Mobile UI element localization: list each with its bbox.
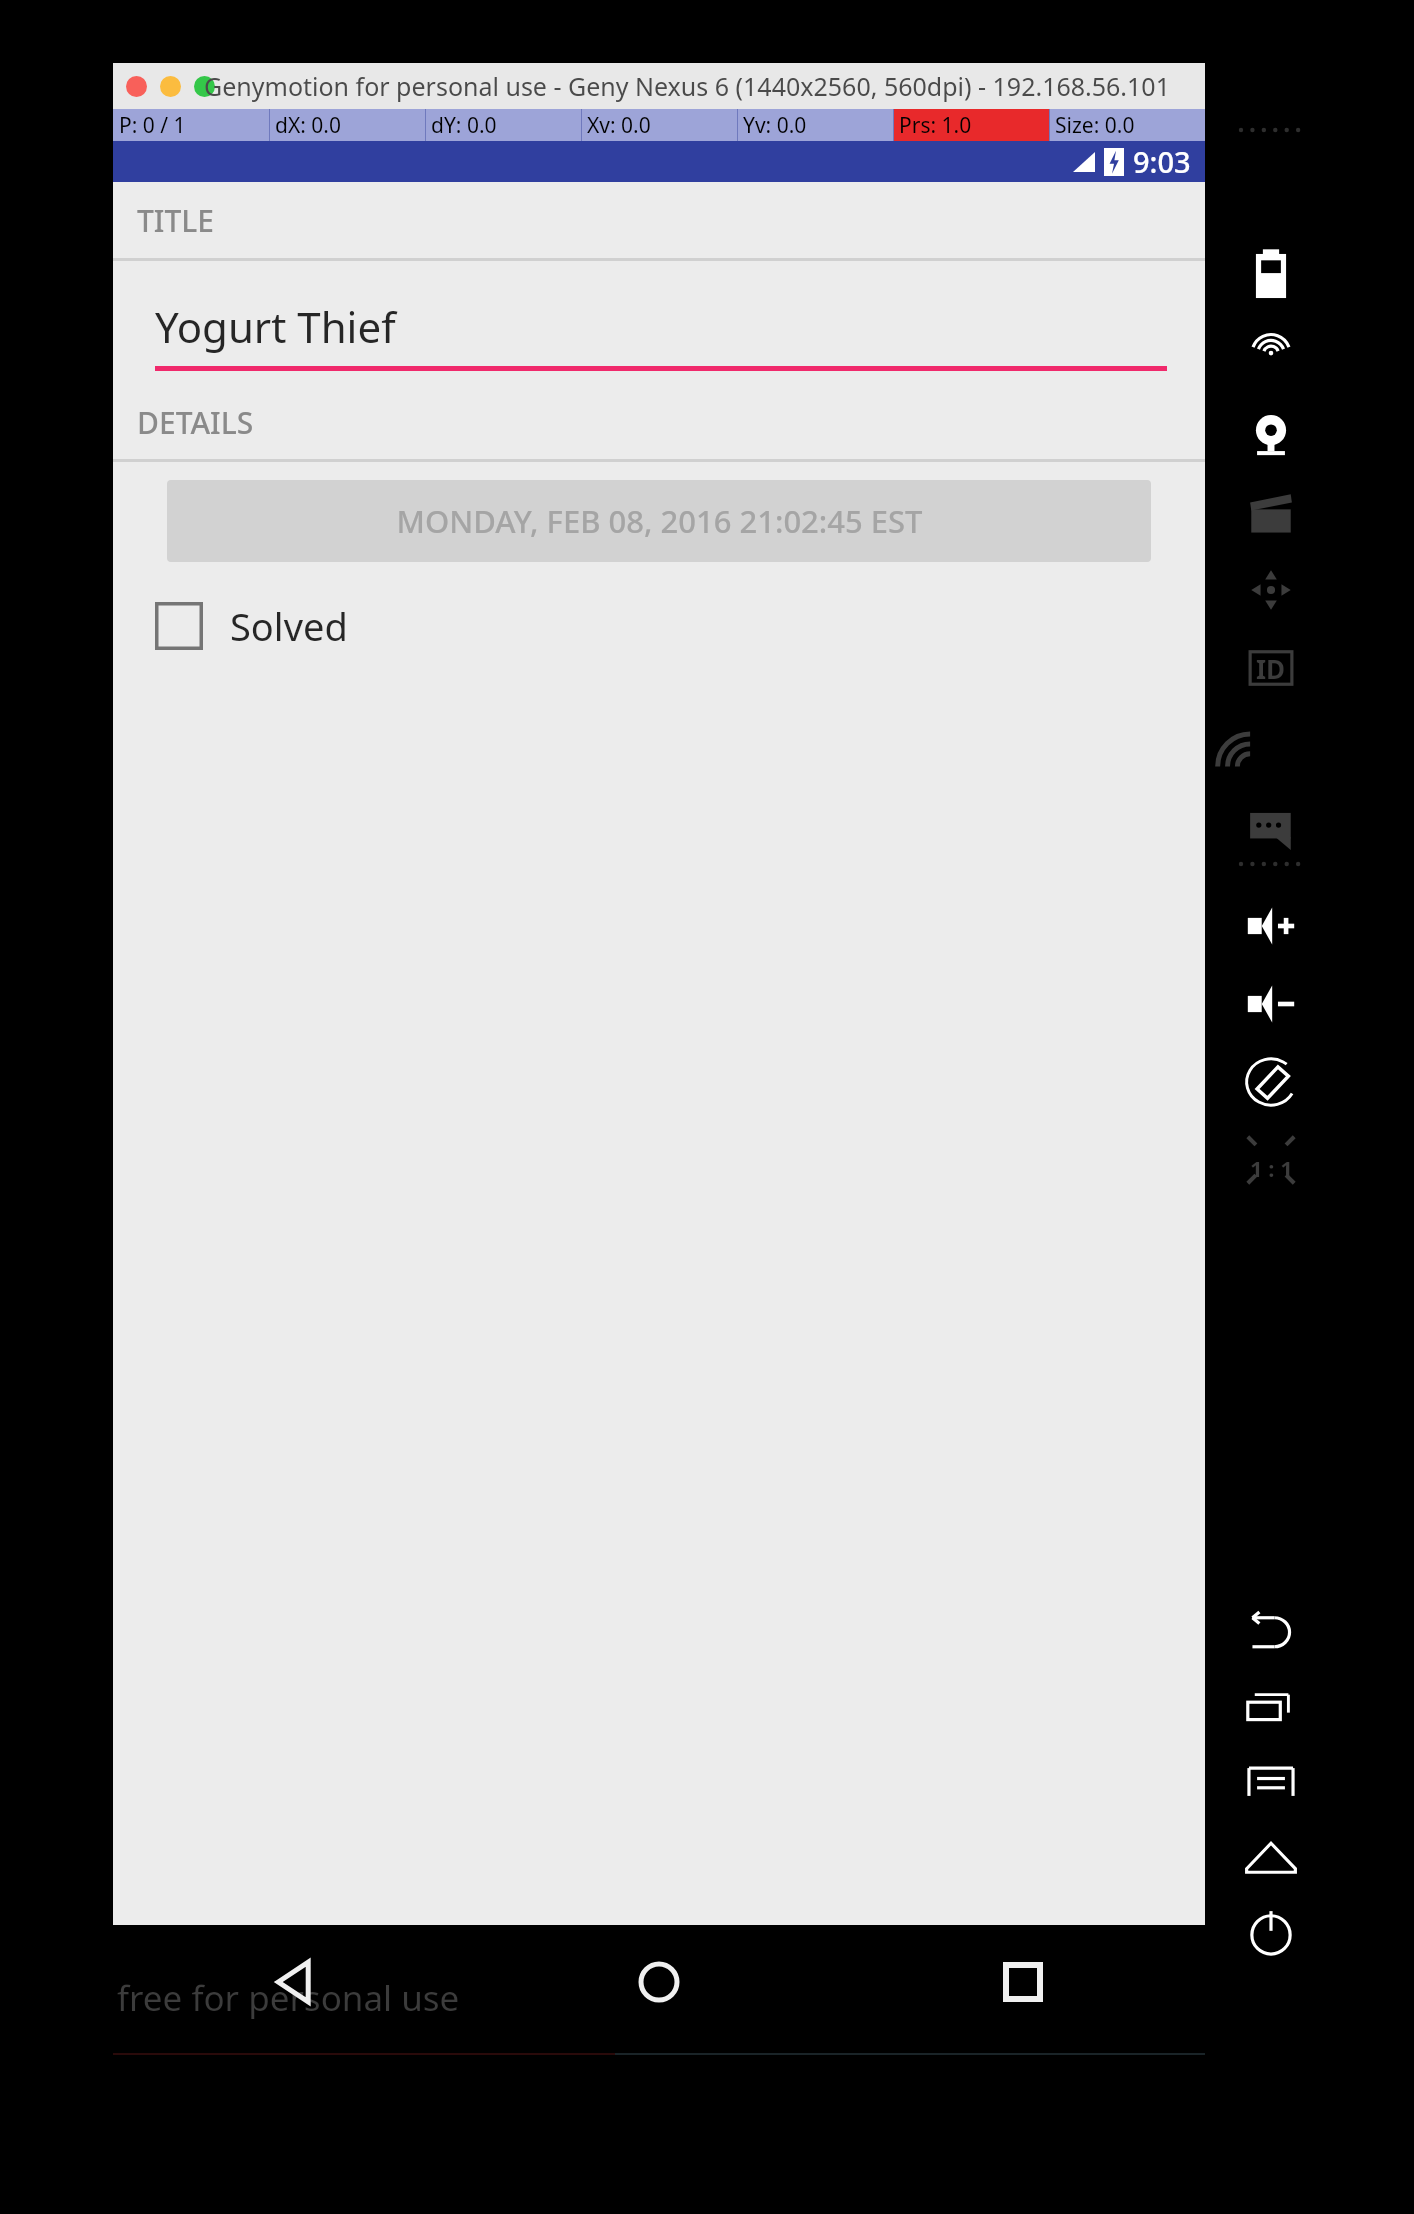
staticText: Size: 0.0 (1055, 111, 1135, 140)
staticText: TITLE (137, 200, 215, 241)
staticText: 1 : 1 (1250, 1153, 1293, 1183)
staticText: P: 0 / 1 (119, 111, 186, 140)
button[interactable]: Menu (1242, 1753, 1300, 1811)
button[interactable]: Volume up (1242, 897, 1300, 955)
button[interactable]: Screen recorder (1242, 485, 1300, 543)
button[interactable]: Scale 1:1 (1242, 1131, 1300, 1189)
button[interactable]: Rotate (1242, 1053, 1300, 1111)
staticText: Yogurt Thief (155, 298, 396, 355)
button[interactable]: MONDAY, FEB 08, 2016 21:02:45 EST (167, 480, 1151, 562)
staticText: Solved (230, 600, 348, 652)
button[interactable]: SMS (1242, 799, 1300, 857)
button[interactable] (194, 76, 215, 97)
button[interactable]: Back (1242, 1605, 1300, 1663)
button[interactable]: Power (1242, 1903, 1300, 1961)
button[interactable]: Camera (1242, 407, 1300, 465)
staticText: Prs: 1.0 (899, 111, 972, 140)
button[interactable]: Network (1242, 719, 1300, 777)
button[interactable]: Battery (1242, 247, 1300, 305)
button[interactable] (126, 76, 147, 97)
button[interactable]: Volume down (1242, 975, 1300, 1033)
staticText: dY: 0.0 (431, 111, 497, 140)
button[interactable]: Home (477, 1917, 841, 2047)
staticText: DETAILS (137, 402, 254, 443)
staticText: Yv: 0.0 (743, 111, 807, 140)
staticText: ID (1256, 651, 1286, 686)
staticText: 9:03 (1133, 142, 1191, 181)
staticText: Genymotion for personal use - Geny Nexus… (204, 69, 1170, 103)
button[interactable]: Yogurt Thief (155, 298, 1167, 371)
button[interactable]: Recent apps (841, 1917, 1205, 2047)
button[interactable]: D-pad (1242, 561, 1300, 619)
button[interactable]: Solved (155, 588, 348, 664)
staticText: Xv: 0.0 (587, 111, 651, 140)
button[interactable]: Home (1242, 1827, 1300, 1885)
button[interactable]: GPS (1242, 327, 1300, 385)
staticText: MONDAY, FEB 08, 2016 21:02:45 EST (396, 500, 923, 542)
button[interactable]: Recent apps (1242, 1679, 1300, 1737)
button[interactable]: Back (113, 1917, 477, 2047)
button[interactable]: Identifiers (1242, 639, 1300, 697)
staticText: dX: 0.0 (275, 111, 341, 140)
button[interactable] (160, 76, 181, 97)
staticText: free for personal use (117, 1974, 460, 2022)
